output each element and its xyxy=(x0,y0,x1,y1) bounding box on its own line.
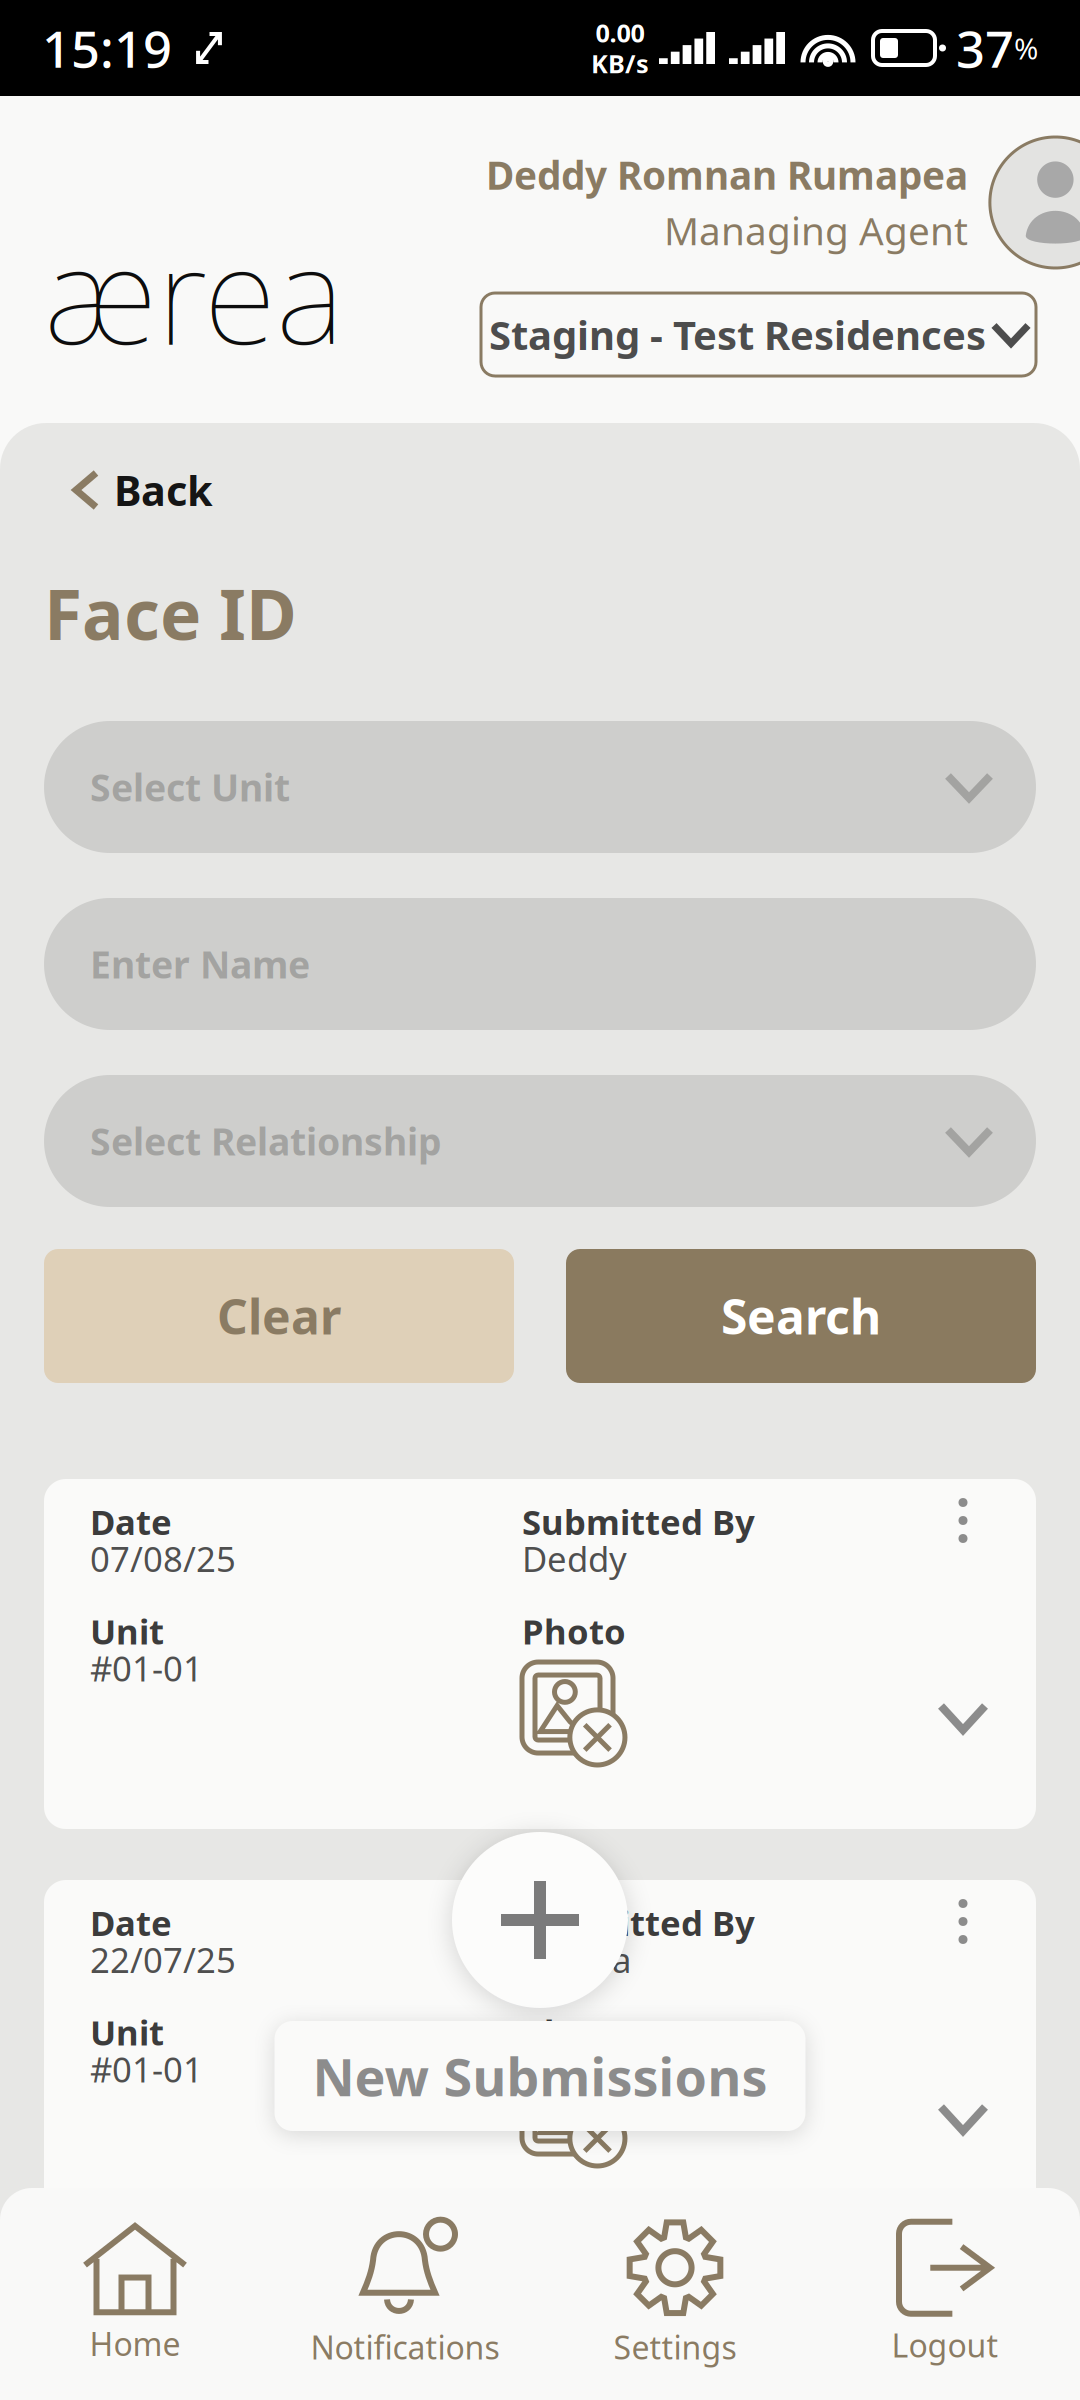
staticText: Home xyxy=(89,2322,180,2365)
staticText: 0.00 xyxy=(595,16,644,49)
staticText: Select Unit xyxy=(90,762,290,812)
staticText: Face ID xyxy=(44,567,297,659)
staticText: #01-01 xyxy=(90,1645,203,1691)
staticText: Deddy Romnan Rumapea xyxy=(486,149,968,200)
staticText: Settings xyxy=(613,2326,736,2368)
staticText: 07/08/25 xyxy=(90,1535,236,1581)
staticText: Date xyxy=(90,1498,172,1544)
button[interactable]: Select Unit xyxy=(44,721,1036,853)
button[interactable]: Search xyxy=(566,1249,1036,1383)
staticText: Managing Agent xyxy=(664,204,968,256)
staticText: Submitted By xyxy=(522,1899,755,1945)
staticText: 22/07/25 xyxy=(90,1936,236,1982)
staticText: 15:19 xyxy=(42,14,172,82)
button[interactable]: More options xyxy=(936,1498,990,1582)
staticText: Marcia xyxy=(522,1936,631,1982)
button[interactable]: Staging - Test Residences xyxy=(481,293,1036,376)
button[interactable]: Clear xyxy=(44,1249,514,1383)
staticText: ærea xyxy=(44,204,344,381)
staticText: 37 xyxy=(956,14,1014,82)
staticText: New Submissions xyxy=(312,2041,767,2111)
staticText: Logout xyxy=(891,2324,998,2366)
staticText: Photo xyxy=(522,1608,626,1654)
button[interactable]: Profile xyxy=(990,137,1080,268)
staticText: Back xyxy=(114,463,213,517)
staticText: Photo xyxy=(522,2009,626,2055)
staticText: % xyxy=(1014,28,1038,67)
button[interactable]: Home xyxy=(0,2189,270,2399)
staticText: #01-01 xyxy=(90,2046,203,2092)
button[interactable]: Notifications xyxy=(270,2189,540,2399)
staticText: Unit xyxy=(90,1608,164,1654)
staticText: Staging - Test Residences xyxy=(489,308,986,361)
staticText: Select Relationship xyxy=(90,1116,442,1166)
button[interactable]: New submission xyxy=(452,1832,628,2008)
staticText: Unit xyxy=(90,2009,164,2055)
staticText: Clear xyxy=(217,1284,341,1348)
staticText: Deddy xyxy=(522,1535,627,1581)
button[interactable]: Select Relationship xyxy=(44,1075,1036,1207)
staticText: Notifications xyxy=(310,2326,499,2368)
staticText: Enter Name xyxy=(90,939,310,989)
button[interactable]: Back xyxy=(0,450,1080,530)
staticText: Date xyxy=(90,1899,172,1945)
button[interactable]: Enter Name xyxy=(44,898,1036,1030)
staticText: Submitted By xyxy=(522,1498,755,1544)
staticText: Search xyxy=(721,1284,881,1348)
button[interactable]: Logout xyxy=(810,2189,1080,2399)
button[interactable]: Settings xyxy=(540,2189,810,2399)
staticText: KB/s xyxy=(591,46,649,80)
button[interactable]: More options xyxy=(936,1899,990,1983)
